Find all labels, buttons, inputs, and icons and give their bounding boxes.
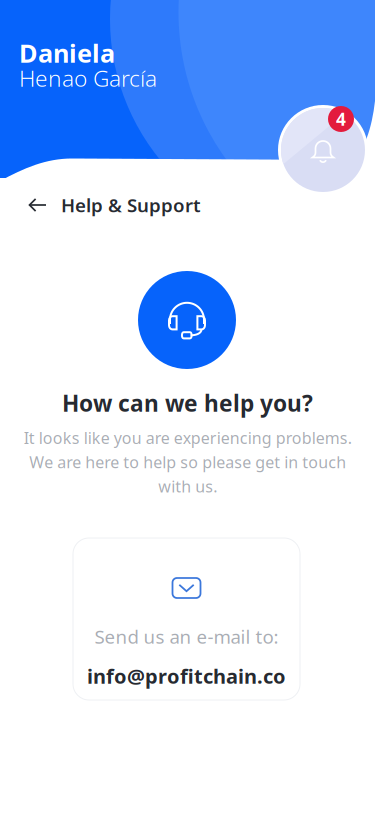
button[interactable]: Back to Help & Support [28,193,201,217]
staticText: How can we help you? [62,388,313,418]
staticText: Daniela [19,36,115,70]
staticText: Help & Support [61,193,201,217]
button[interactable]: Notifications [281,108,365,192]
staticText: Send us an e-mail to: [94,624,278,649]
button[interactable]: Send us an e-mail to: [73,538,300,700]
staticText: 4 [336,107,346,130]
staticText: It looks like you are experiencing probl… [23,427,351,497]
staticText: Henao García [19,63,157,93]
staticText: info@profitchain.co [87,663,286,689]
